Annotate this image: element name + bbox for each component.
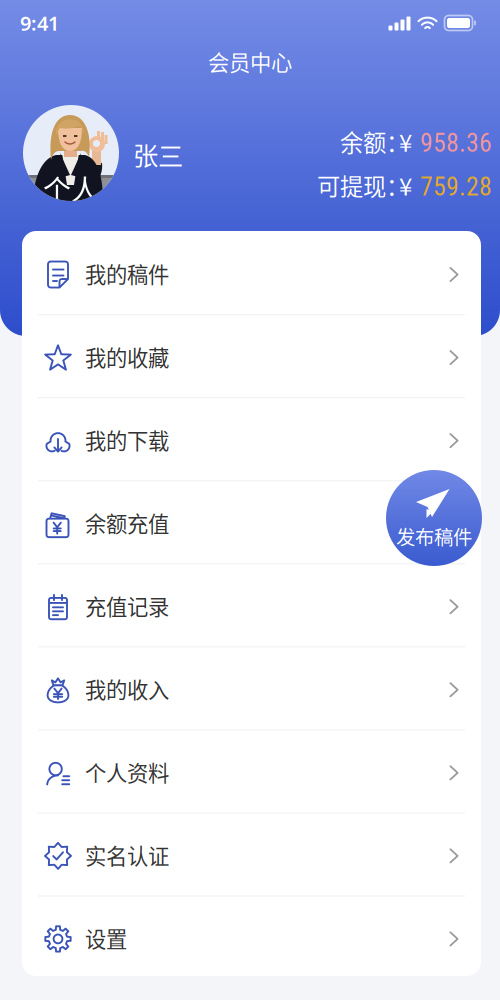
button[interactable]: 我的下载 xyxy=(22,397,481,480)
button[interactable]: 个人资料 xyxy=(22,729,481,812)
button[interactable]: 我的收藏 xyxy=(22,314,481,397)
staticText: 我的下载 xyxy=(85,424,169,455)
button[interactable]: 充值记录 xyxy=(22,563,481,646)
button[interactable]: 实名认证 xyxy=(22,812,481,895)
staticText: 我的收入 xyxy=(85,673,169,704)
staticText: 我的稿件 xyxy=(85,258,169,289)
staticText: 充值记录 xyxy=(85,590,169,621)
staticText: 发布稿件 xyxy=(396,522,472,550)
button[interactable]: 发布稿件 xyxy=(386,470,482,566)
staticText: 可提现： xyxy=(317,168,409,202)
staticText: 个人 xyxy=(43,168,99,208)
button[interactable]: 余额充值 xyxy=(22,480,481,563)
button[interactable]: 我的稿件 xyxy=(22,231,481,314)
staticText: 9:41 xyxy=(20,10,59,36)
staticText: ¥ xyxy=(399,168,412,203)
staticText: 余额： xyxy=(340,125,409,159)
staticText: 实名认证 xyxy=(85,839,169,870)
staticText: 张三 xyxy=(133,136,183,173)
button[interactable]: 我的收入 xyxy=(22,646,481,729)
button[interactable]: 设置 xyxy=(22,895,481,978)
staticText: 759.28 xyxy=(420,171,492,202)
staticText: 我的收藏 xyxy=(85,341,169,372)
staticText: ¥ xyxy=(399,124,412,159)
staticText: 958.36 xyxy=(420,128,492,158)
staticText: 会员中心 xyxy=(208,46,292,77)
staticText: 个人资料 xyxy=(85,756,169,787)
staticText: 余额充值 xyxy=(85,507,169,538)
staticText: 设置 xyxy=(85,922,127,953)
